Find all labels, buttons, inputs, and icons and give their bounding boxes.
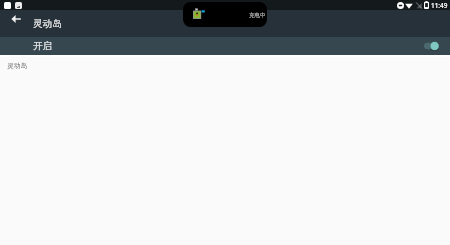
staticText: 11:49 bbox=[431, 1, 448, 10]
staticText: 灵动岛 bbox=[33, 18, 62, 30]
staticText: 灵动岛 bbox=[7, 61, 28, 70]
button[interactable]: Toggle Dynamic Island on bbox=[423, 38, 444, 54]
button[interactable]: 开启 bbox=[0, 37, 450, 55]
button[interactable]: Back bbox=[7, 10, 24, 27]
button[interactable]: Charging status bbox=[183, 2, 267, 27]
staticText: 开启 bbox=[33, 40, 52, 52]
staticText: 充电中 bbox=[249, 12, 266, 19]
